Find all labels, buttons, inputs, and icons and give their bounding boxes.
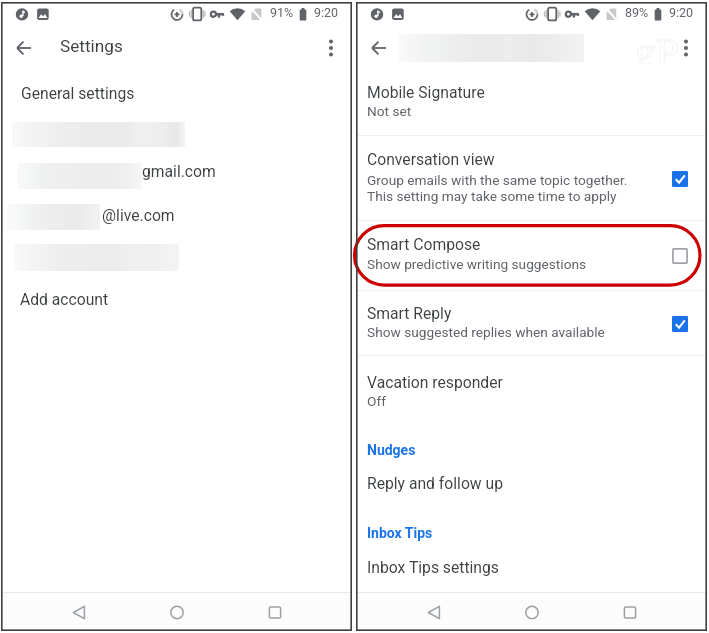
staticText: gP bbox=[635, 26, 679, 64]
staticText: 89% bbox=[625, 5, 649, 20]
staticText: Smart Compose bbox=[367, 235, 481, 253]
button[interactable]: Conversation view bbox=[356, 136, 707, 220]
staticText: 91% bbox=[270, 5, 294, 20]
button[interactable]: @live.com bbox=[1, 196, 352, 236]
button[interactable]: Smart Compose bbox=[356, 221, 707, 290]
staticText: Show predictive writing suggestions bbox=[367, 256, 587, 272]
button[interactable]: Inbox Tips settings bbox=[356, 550, 707, 590]
staticText: Conversation view bbox=[367, 150, 495, 168]
staticText: Add account bbox=[20, 290, 109, 308]
staticText: Reply and follow up bbox=[367, 474, 503, 492]
button[interactable]: Smart Reply bbox=[356, 291, 707, 355]
staticText: Nudges bbox=[367, 442, 416, 458]
staticText: @live.com bbox=[102, 206, 175, 224]
staticText: Inbox Tips bbox=[367, 525, 433, 541]
staticText: Group emails with the same topic togethe… bbox=[367, 172, 628, 188]
staticText: Not set bbox=[367, 103, 412, 119]
staticText: This setting may take some time to apply bbox=[367, 188, 617, 204]
staticText: Mobile Signature bbox=[367, 83, 485, 101]
staticText: 9:20 bbox=[314, 5, 339, 20]
staticText: General settings bbox=[21, 84, 135, 102]
staticText: Off bbox=[367, 393, 386, 409]
button[interactable]: Back bbox=[4, 29, 44, 67]
staticText: Inbox Tips settings bbox=[367, 558, 499, 576]
button[interactable]: More options bbox=[313, 30, 349, 66]
button[interactable]: Home bbox=[512, 593, 552, 632]
staticText: 9:20 bbox=[669, 5, 694, 20]
staticText: Smart Reply bbox=[367, 304, 452, 322]
button[interactable]: General settings bbox=[1, 74, 352, 108]
staticText: Vacation responder bbox=[367, 373, 503, 391]
staticText: gmail.com bbox=[142, 162, 216, 180]
staticText: Settings bbox=[60, 36, 123, 56]
staticText: Show suggested replies when available bbox=[367, 324, 605, 340]
button[interactable]: gmail.com bbox=[1, 155, 352, 195]
button[interactable]: Home bbox=[157, 593, 197, 632]
button[interactable]: Vacation responder bbox=[356, 356, 707, 426]
button[interactable]: Add account bbox=[1, 284, 352, 320]
button[interactable]: Reply and follow up bbox=[356, 467, 707, 505]
button[interactable]: Recents bbox=[610, 593, 650, 632]
button[interactable]: Back bbox=[414, 593, 454, 632]
button[interactable]: More options bbox=[668, 30, 704, 66]
button[interactable]: Back bbox=[359, 29, 399, 67]
button[interactable]: Mobile Signature bbox=[356, 70, 707, 134]
button[interactable]: Recents bbox=[255, 593, 295, 632]
button[interactable]: Inbox Tips bbox=[356, 517, 707, 550]
button[interactable]: Nudges bbox=[356, 434, 707, 467]
button[interactable]: Back bbox=[59, 593, 99, 632]
